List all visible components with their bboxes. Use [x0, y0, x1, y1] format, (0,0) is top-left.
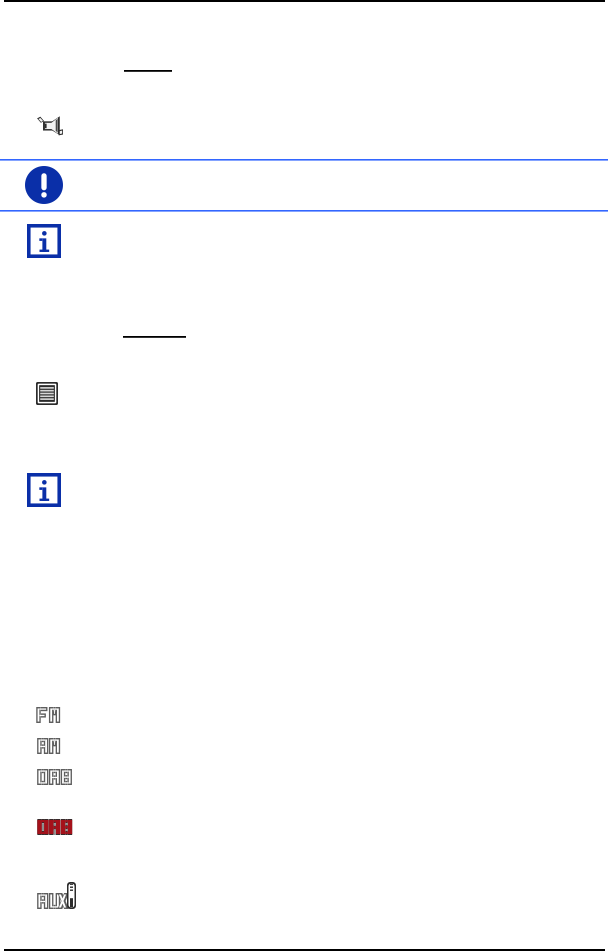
button[interactable] — [34, 707, 57, 723]
button[interactable] — [34, 819, 69, 835]
button[interactable]: AUX input jack — [67, 882, 76, 909]
button[interactable]: Information — [27, 473, 61, 507]
button[interactable] — [34, 893, 69, 909]
button[interactable] — [34, 738, 57, 754]
button[interactable]: Sound settings — [36, 115, 63, 136]
button[interactable]: Information — [27, 224, 61, 258]
button[interactable]: Menu — [36, 382, 58, 405]
button[interactable]: Warning notice — [25, 166, 63, 204]
button[interactable] — [34, 769, 69, 785]
